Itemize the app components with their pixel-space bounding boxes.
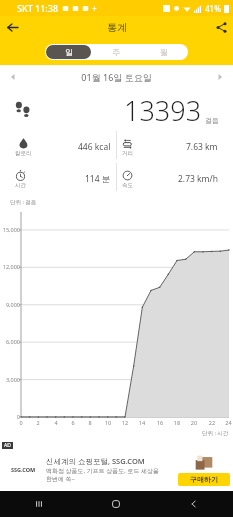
button[interactable]: 속도 [117, 163, 223, 195]
staticText: 8 [85, 419, 95, 426]
staticText: 단위 : 걸음 [10, 198, 37, 206]
button[interactable]: Previous day [0, 65, 26, 89]
staticText: 41% [205, 3, 221, 14]
button[interactable]: 시간 [10, 163, 116, 195]
staticText: 446 kcal [78, 141, 111, 153]
staticText: 신세계의 쇼핑포털, SSG.COM [46, 456, 145, 466]
button[interactable]: Recents [0, 491, 77, 517]
staticText: 시간 [15, 182, 26, 189]
staticText: 0 [1, 413, 20, 420]
staticText: SSG.COM [11, 466, 36, 473]
staticText: 속도 [122, 182, 133, 189]
button[interactable]: 주 [93, 45, 139, 59]
staticText: 2.73 km/h [178, 173, 218, 185]
staticText: 114 분 [85, 173, 111, 185]
button[interactable]: Home [77, 491, 155, 517]
button[interactable]: Back [0, 16, 24, 39]
staticText: 단위 : 시간 [202, 429, 229, 437]
staticText: 4 [51, 419, 61, 426]
staticText: 01월 16일 토요일 [26, 71, 207, 83]
staticText: 7.63 km [186, 141, 218, 153]
staticText: 12,000 [1, 263, 20, 270]
staticText: 16 [155, 419, 165, 426]
staticText: 12 [120, 419, 130, 426]
staticText: 14 [137, 419, 147, 426]
staticText: 칼로리 [15, 150, 32, 157]
staticText: 거리 [122, 150, 133, 157]
staticText: 18 [172, 419, 182, 426]
button[interactable]: 일 [46, 45, 91, 59]
staticText: SKT 11:38 [17, 2, 59, 14]
staticText: 통계 [107, 21, 127, 34]
button[interactable]: Share [209, 16, 233, 39]
staticText: 2 [33, 419, 43, 426]
button[interactable]: 칼로리 [10, 131, 116, 163]
button[interactable]: Back [155, 491, 233, 517]
staticText: 6,000 [1, 338, 20, 345]
staticText: 0 [16, 419, 26, 426]
staticText: 15,000 [1, 226, 20, 233]
button[interactable]: 거리 [117, 131, 223, 163]
staticText: 20 [189, 419, 199, 426]
staticText: AD [4, 442, 11, 449]
button[interactable]: SSG.COM [0, 448, 233, 491]
button[interactable]: 월 [141, 45, 187, 59]
staticText: 10 [103, 419, 113, 426]
staticText: 9,000 [1, 301, 20, 308]
staticText: 백화점 상품도, 기프트 상품도, 로드 세상을 한번에 쏙~ [46, 467, 160, 483]
staticText: 3,000 [1, 376, 20, 383]
button[interactable]: 구매하기 [178, 473, 230, 486]
staticText: 6 [68, 419, 78, 426]
staticText: 걸음 [205, 116, 219, 125]
staticText: 일 [65, 47, 73, 57]
staticText: + [92, 3, 97, 14]
staticText: 22 [207, 419, 217, 426]
staticText: 주 [112, 47, 120, 57]
staticText: 구매하기 [190, 475, 218, 484]
button[interactable]: Next day [207, 65, 233, 89]
staticText: 13393 [124, 92, 202, 129]
staticText: 월 [160, 47, 168, 57]
staticText: 24 [224, 419, 233, 426]
